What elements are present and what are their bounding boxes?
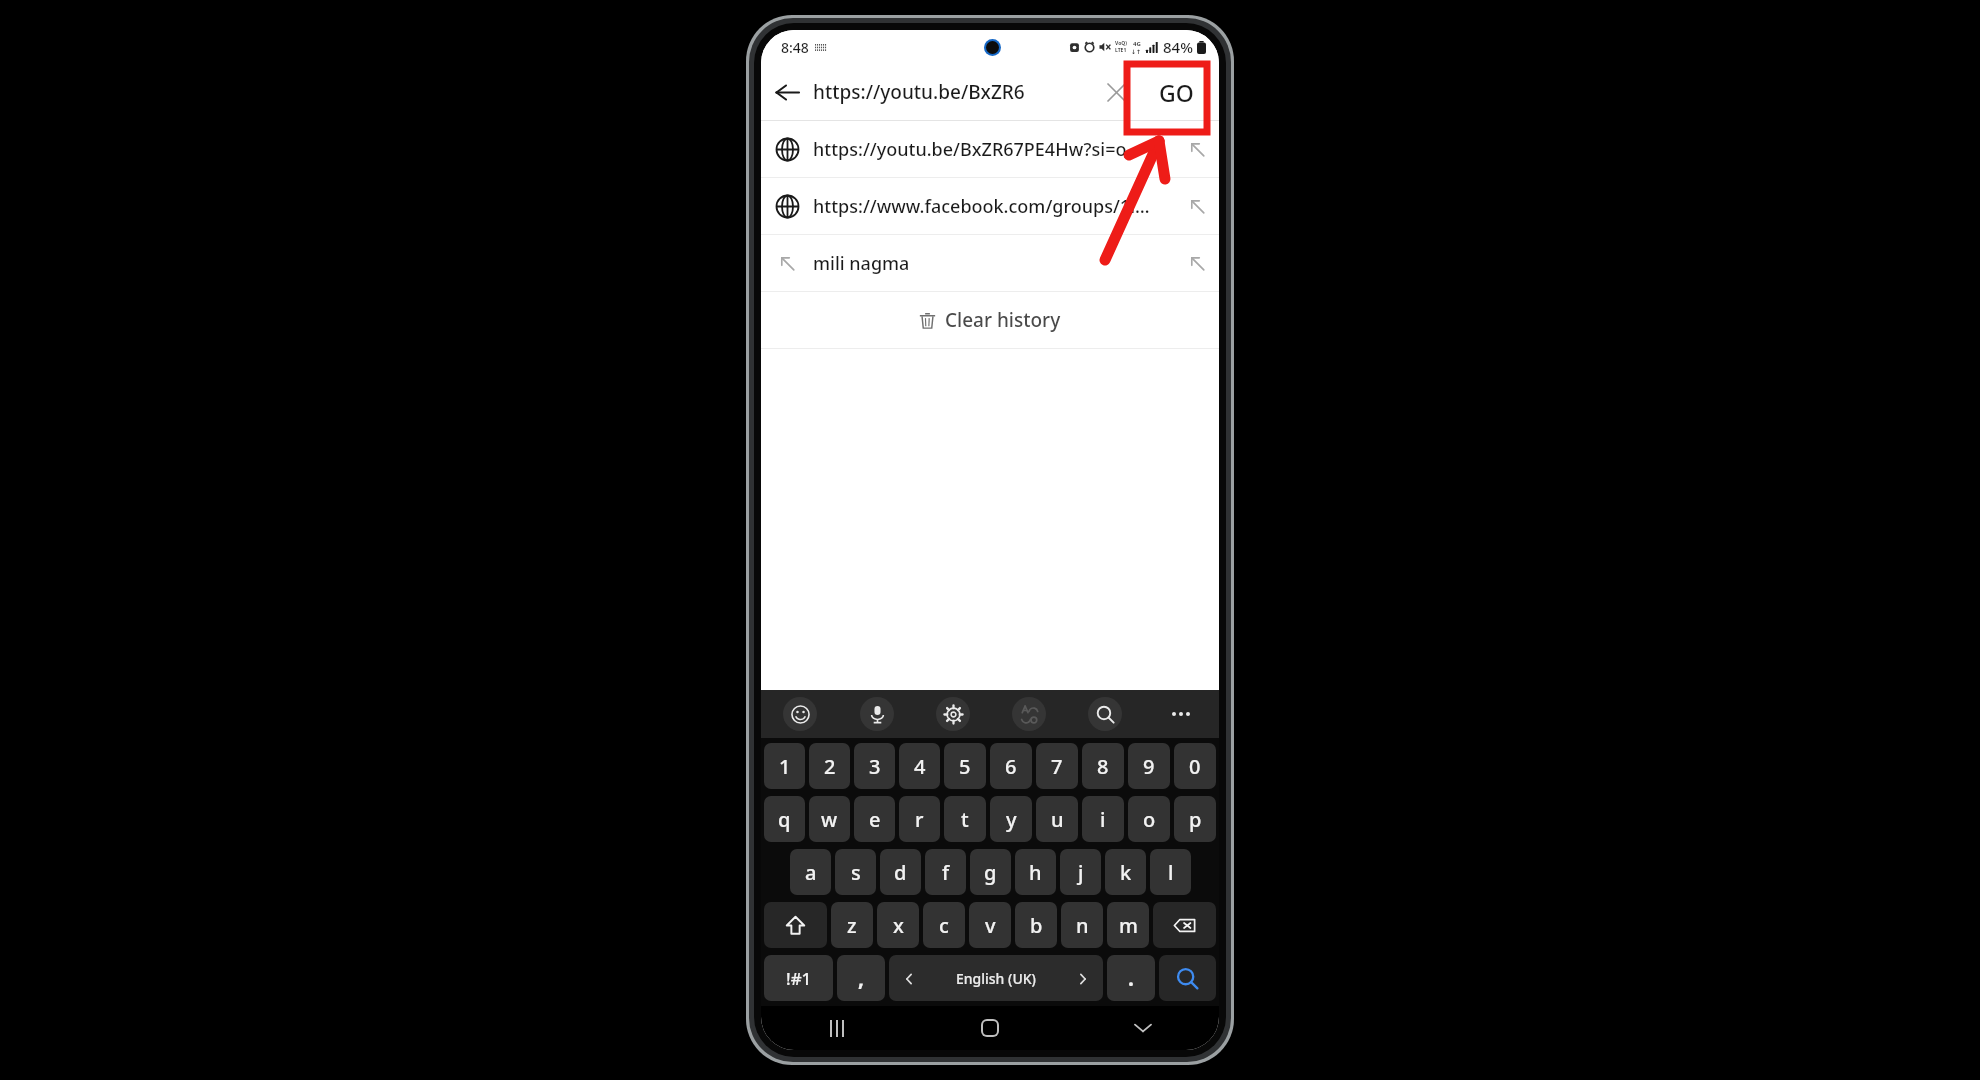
button[interactable]: Back [761,66,813,118]
button[interactable]: !#1 [764,955,833,1001]
staticText: p [1189,806,1202,833]
button[interactable]: a [790,849,831,895]
button[interactable]: Search [1067,690,1143,738]
staticText: j [1078,859,1084,886]
button[interactable]: t [944,796,986,842]
staticText: d [894,859,907,886]
button[interactable]: c [923,902,965,948]
staticText: v [985,912,996,939]
button[interactable]: Translate [991,690,1067,738]
button[interactable]: , [837,955,885,1001]
staticText: g [984,859,997,886]
button[interactable]: English (UK) [889,955,1103,1001]
staticText: 7 [1051,753,1063,780]
staticText: 4 [914,753,926,780]
button[interactable]: Use suggestion [1175,184,1219,228]
button[interactable]: w [809,796,850,842]
staticText: https://youtu.be/BxZR6 [813,79,1099,105]
button[interactable]: Clear text [1099,75,1133,109]
button[interactable]: x [877,902,919,948]
staticText: b [1030,912,1043,939]
button[interactable]: r [899,796,940,842]
button[interactable]: j [1060,849,1101,895]
staticText: i [1100,806,1106,833]
button[interactable]: d [880,849,921,895]
button[interactable]: 6 [990,743,1032,789]
button[interactable]: Use suggestion [1175,127,1219,171]
staticText: z [847,912,857,939]
staticText: https://www.facebook.com/groups/1l… [813,194,1175,219]
button[interactable]: k [1105,849,1146,895]
button[interactable]: y [990,796,1032,842]
button[interactable]: Clear history [761,292,1219,348]
button[interactable]: 8 [1082,743,1124,789]
button[interactable]: h [1015,849,1056,895]
button[interactable]: https://www.facebook.com/groups/1l… [761,178,1219,234]
button[interactable]: m [1107,902,1149,948]
staticText: 6 [1005,753,1017,780]
button[interactable]: 5 [944,743,986,789]
staticText: u [1051,806,1064,833]
button[interactable]: Hide keyboard [1066,1006,1219,1050]
button[interactable]: 7 [1036,743,1078,789]
button[interactable]: Use suggestion [1175,241,1219,285]
button[interactable]: s [835,849,876,895]
button[interactable]: o [1128,796,1170,842]
button[interactable]: https://youtu.be/BxZR67PE4Hw?si=o. [761,121,1219,177]
button[interactable]: u [1036,796,1078,842]
button[interactable]: Voice input [838,690,915,738]
staticText: English (UK) [956,969,1036,988]
button[interactable]: e [854,796,895,842]
button[interactable]: GO [1133,64,1219,120]
button[interactable]: More options [1143,690,1219,738]
button[interactable]: Keyboard settings [915,690,991,738]
staticText: h [1029,859,1042,886]
button[interactable]: f [925,849,966,895]
button[interactable]: Home [913,1006,1066,1050]
button[interactable]: Recent apps [761,1006,913,1050]
staticText: . [1128,964,1134,993]
button[interactable]: Shift [764,902,827,948]
staticText: GO [1159,77,1194,108]
button[interactable]: i [1082,796,1124,842]
button[interactable]: 4 [899,743,940,789]
button[interactable]: p [1174,796,1216,842]
button[interactable]: Search [1159,955,1216,1001]
staticText: mili nagma [813,251,1175,276]
staticText: !#1 [786,967,812,990]
button[interactable]: b [1015,902,1057,948]
button[interactable]: 1 [764,743,805,789]
staticText: c [939,912,949,939]
button[interactable]: v [969,902,1011,948]
button[interactable]: 3 [854,743,895,789]
button[interactable]: n [1061,902,1103,948]
staticText: 84% [1163,37,1193,57]
staticText: f [942,859,950,886]
staticText: s [851,859,861,886]
button[interactable]: 2 [809,743,850,789]
staticText: Clear history [945,307,1061,333]
staticText: t [961,806,969,833]
button[interactable]: z [831,902,873,948]
button[interactable]: Backspace [1153,902,1216,948]
staticText: 8 [1097,753,1109,780]
button[interactable]: Emoji [761,690,838,738]
staticText: n [1076,912,1089,939]
button[interactable]: mili nagma [761,235,1219,291]
staticText: q [778,806,791,833]
button[interactable]: 9 [1128,743,1170,789]
staticText: a [805,859,817,886]
staticText: y [1006,806,1017,833]
staticText: r [915,806,924,833]
button[interactable]: q [764,796,805,842]
staticText: k [1120,859,1132,886]
staticText: 0 [1189,753,1201,780]
button[interactable]: . [1107,955,1155,1001]
button[interactable]: l [1150,849,1191,895]
button[interactable]: g [970,849,1011,895]
button[interactable]: 0 [1174,743,1216,789]
staticText: https://youtu.be/BxZR67PE4Hw?si=o. [813,137,1175,162]
staticText: e [869,806,881,833]
staticText: 9 [1143,753,1155,780]
staticText: 4G [1133,40,1141,48]
